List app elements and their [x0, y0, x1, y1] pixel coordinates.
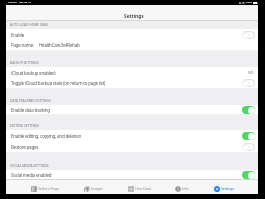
staticText: EDITING SETTINGS [10, 123, 40, 128]
button[interactable]: Settings [214, 183, 234, 194]
staticText: HealthCare3x4Rehab [39, 42, 80, 48]
button[interactable]: Switch on [242, 171, 255, 179]
button[interactable]: iCloud backup enabled: [6, 67, 258, 78]
button[interactable]: Enable [6, 29, 258, 40]
staticText: Enable data tracking [11, 107, 50, 113]
staticText: AUTO LOAD HOME PAGE [10, 22, 48, 27]
staticText: Info [182, 186, 189, 191]
staticText: Tue Apr 14 [19, 1, 31, 4]
staticText: iCloud backup enabled: [11, 70, 56, 76]
staticText: Restore pages [11, 144, 39, 150]
staticText: Settings [124, 13, 144, 20]
staticText: Toggle iCloud backup state (on return to… [11, 80, 106, 86]
staticText: DATA TRACKING SETTINGS [10, 98, 51, 103]
staticText: 100% [246, 1, 252, 4]
button[interactable]: Enable data tracking [6, 105, 258, 114]
staticText: NO [248, 70, 254, 75]
button[interactable]: Switch on [242, 132, 255, 140]
staticText: Images [91, 186, 103, 191]
button[interactable]: Switch on [242, 106, 255, 114]
button[interactable]: Info [175, 183, 189, 194]
button[interactable]: Page name: [6, 40, 258, 50]
button[interactable]: Switch off [242, 31, 255, 39]
button[interactable]: User Data [128, 183, 151, 194]
staticText: Social media enabled [11, 172, 52, 178]
staticText: User Data [135, 186, 151, 191]
staticText: BACKUP SETTINGS [10, 60, 39, 65]
staticText: 5:46 PM [8, 1, 17, 4]
button[interactable]: Switch off [242, 79, 255, 87]
staticText: Select a Page [38, 186, 60, 191]
button[interactable]: Toggle iCloud backup state (on return to… [6, 78, 258, 88]
button[interactable]: Select a Page [31, 183, 60, 194]
button[interactable]: Restore pages [6, 141, 258, 152]
button[interactable]: Switch off [242, 143, 255, 151]
button[interactable]: Enable editing, copying, and deletion [6, 130, 258, 141]
staticText: Page name: [11, 42, 34, 48]
staticText: Settings [221, 186, 234, 191]
staticText: Enable editing, copying, and deletion [11, 133, 81, 139]
button[interactable]: Images [84, 183, 103, 194]
staticText: Enable [11, 32, 24, 38]
staticText: SOCIAL MEDIA SETTINGS [10, 163, 49, 168]
button[interactable]: Social media enabled [6, 170, 258, 179]
